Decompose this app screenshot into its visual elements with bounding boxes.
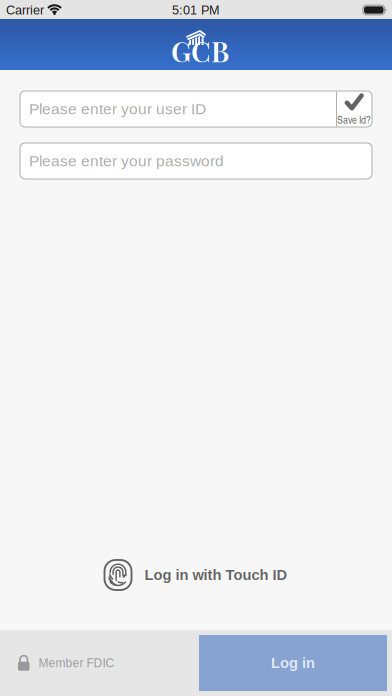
staticText: Log in with Touch ID <box>144 567 287 583</box>
button[interactable]: Please enter your password <box>20 143 372 179</box>
button[interactable]: Log in with Touch ID <box>0 550 392 600</box>
staticText: 5:01 PM <box>172 3 220 17</box>
button[interactable]: Please enter your user ID <box>20 91 372 127</box>
staticText: Please enter your user ID <box>29 100 206 118</box>
staticText: Carrier <box>6 3 44 17</box>
staticText: GCB <box>171 32 229 69</box>
staticText: Please enter your password <box>29 152 224 170</box>
staticText: Member FDIC <box>38 656 114 670</box>
button[interactable]: Log in <box>199 635 387 691</box>
staticText: Save Id? <box>337 112 371 127</box>
staticText: Log in <box>271 655 315 671</box>
